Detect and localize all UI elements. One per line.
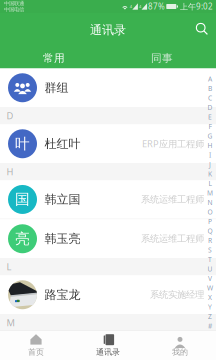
staticText: # bbox=[208, 322, 212, 330]
staticText: 亮 bbox=[15, 230, 30, 248]
staticText: 系统运维工程师 bbox=[141, 194, 204, 205]
staticText: T bbox=[208, 255, 212, 264]
staticText: 上午9:02 bbox=[180, 1, 213, 12]
button[interactable]: 首页 bbox=[0, 331, 72, 360]
staticText: C bbox=[208, 94, 212, 102]
staticText: P bbox=[208, 217, 212, 226]
staticText: 87% bbox=[148, 1, 165, 12]
staticText: 中国电信 bbox=[4, 6, 24, 13]
staticText: 同事 bbox=[151, 52, 173, 65]
button[interactable]: 通讯录 bbox=[72, 331, 144, 360]
staticText: 韩立国 bbox=[44, 192, 80, 207]
staticText: U bbox=[207, 265, 212, 273]
staticText: 路宝龙 bbox=[44, 287, 80, 302]
staticText: S bbox=[208, 246, 212, 254]
staticText: A bbox=[208, 75, 212, 83]
staticText: M bbox=[207, 189, 213, 197]
staticText: Y bbox=[208, 303, 212, 311]
staticText: 首页 bbox=[28, 347, 44, 357]
staticText: 系统运维工程师 bbox=[141, 233, 204, 244]
button[interactable]: 搜索 bbox=[188, 13, 216, 43]
staticText: 群组 bbox=[44, 80, 68, 95]
staticText: W bbox=[207, 284, 213, 292]
staticText: 我的 bbox=[172, 347, 188, 357]
staticText: D bbox=[207, 103, 212, 112]
staticText: 通讯录 bbox=[90, 23, 126, 37]
button[interactable]: 常用 bbox=[0, 43, 108, 69]
button[interactable]: 我的 bbox=[144, 331, 216, 360]
staticText: X bbox=[208, 293, 212, 302]
staticText: 4 bbox=[139, 4, 141, 9]
staticText: 系统实施经理 bbox=[150, 289, 204, 300]
staticText: H bbox=[6, 166, 13, 178]
staticText: 韩玉亮 bbox=[44, 231, 80, 246]
staticText: O bbox=[207, 208, 212, 216]
button[interactable]: 路宝龙 bbox=[0, 275, 216, 314]
staticText: J bbox=[209, 160, 211, 169]
staticText: ERP应用工程师 bbox=[142, 137, 204, 150]
staticText: M bbox=[6, 317, 14, 329]
staticText: 中国联通 bbox=[4, 0, 24, 7]
staticText: E bbox=[208, 113, 212, 121]
staticText: 叶 bbox=[15, 135, 30, 153]
staticText: H bbox=[207, 141, 212, 150]
staticText: Q bbox=[207, 227, 212, 235]
staticText: I bbox=[209, 151, 211, 159]
staticText: 国 bbox=[15, 190, 30, 208]
button[interactable]: 群组 bbox=[0, 68, 216, 107]
staticText: F bbox=[208, 122, 211, 131]
button[interactable]: 国 bbox=[0, 180, 216, 219]
button[interactable]: 字母索引 bbox=[204, 74, 215, 331]
staticText: 通讯录 bbox=[96, 347, 120, 357]
staticText: B bbox=[208, 84, 212, 93]
staticText: L bbox=[6, 261, 11, 273]
staticText: 常用 bbox=[43, 52, 65, 65]
staticText: G bbox=[207, 132, 212, 140]
button[interactable]: 同事 bbox=[108, 43, 216, 69]
staticText: V bbox=[208, 274, 212, 283]
staticText: Z bbox=[208, 312, 212, 321]
staticText: 4 bbox=[130, 4, 132, 9]
staticText: 杜红叶 bbox=[44, 136, 80, 151]
staticText: K bbox=[208, 170, 212, 178]
staticText: R bbox=[208, 236, 212, 245]
staticText: D bbox=[6, 110, 13, 122]
button[interactable]: 叶 bbox=[0, 124, 216, 163]
staticText: N bbox=[207, 198, 212, 207]
staticText: L bbox=[208, 179, 211, 188]
button[interactable]: 亮 bbox=[0, 219, 216, 258]
